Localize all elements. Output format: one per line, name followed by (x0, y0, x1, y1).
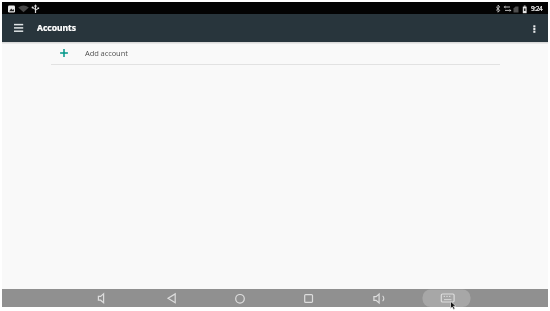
staticText: 9:24 (531, 4, 543, 13)
staticText: Add account (85, 48, 128, 58)
button[interactable] (522, 17, 544, 39)
button[interactable]: Add account (51, 42, 500, 64)
button[interactable] (226, 289, 254, 307)
button[interactable] (433, 289, 461, 307)
button[interactable] (364, 289, 392, 307)
button[interactable] (88, 289, 116, 307)
button[interactable] (6, 15, 32, 41)
staticText: Accounts (37, 22, 76, 34)
button[interactable] (295, 289, 323, 307)
button[interactable] (158, 289, 186, 307)
